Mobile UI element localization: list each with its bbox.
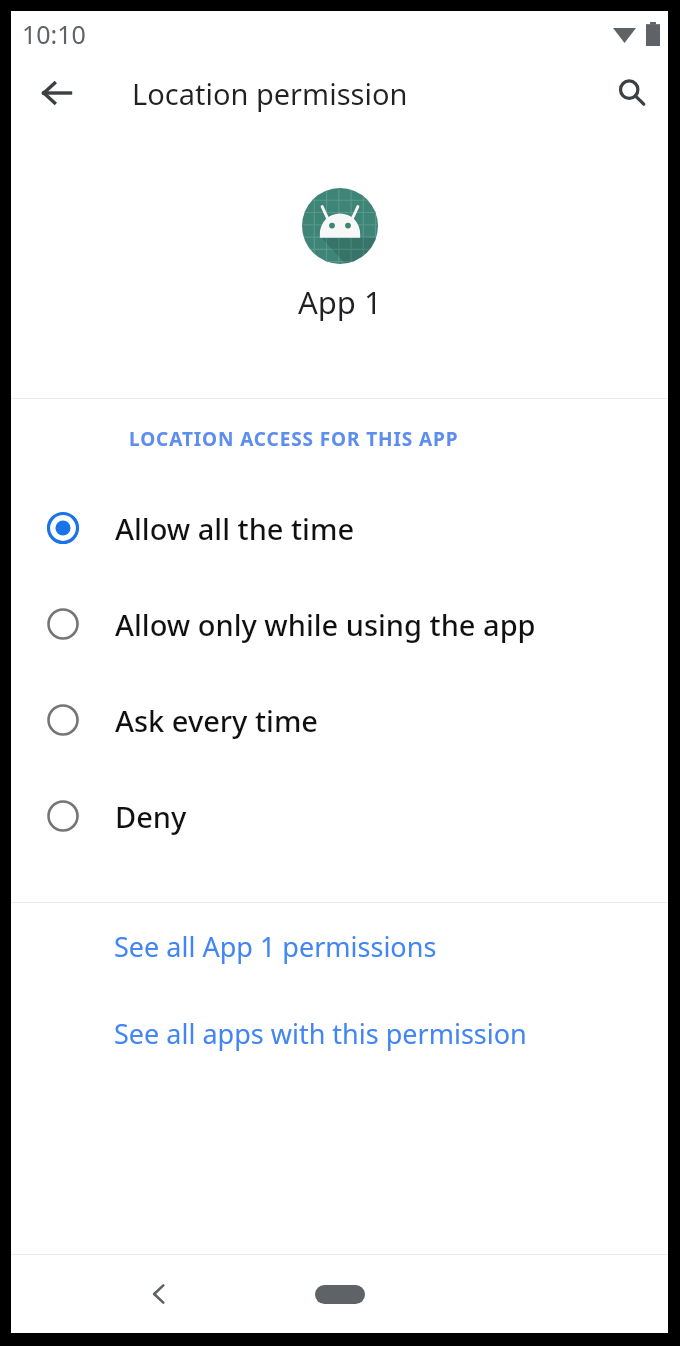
staticText: App 1 [298,281,382,323]
button[interactable]: Back [33,69,81,117]
staticText: LOCATION ACCESS FOR THIS APP [129,426,459,452]
button[interactable]: See all apps with this permission [11,990,668,1077]
button[interactable]: Deny [11,768,668,864]
button[interactable]: Search [608,69,656,117]
button[interactable]: Allow all the time [11,480,668,576]
staticText: Deny [115,797,187,836]
button[interactable]: Back [131,1266,187,1322]
staticText: Allow all the time [115,509,355,548]
button[interactable]: See all App 1 permissions [11,903,668,990]
staticText: 10:10 [22,17,86,51]
staticText: Location permission [132,74,408,113]
staticText: See all App 1 permissions [114,928,437,965]
staticText: See all apps with this permission [114,1015,527,1052]
button[interactable]: Ask every time [11,672,668,768]
staticText: Allow only while using the app [115,605,536,644]
button[interactable]: Home [308,1273,372,1315]
button[interactable]: Allow only while using the app [11,576,668,672]
staticText: Ask every time [115,701,319,740]
